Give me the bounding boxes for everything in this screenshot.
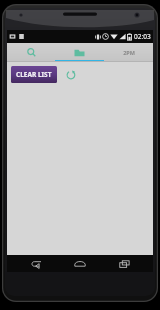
button[interactable]: Home xyxy=(65,255,95,272)
staticText: 2PM xyxy=(123,49,135,56)
button[interactable]: CLEAR LIST xyxy=(11,66,57,83)
staticText: CLEAR LIST xyxy=(16,70,52,79)
button[interactable]: 2PM xyxy=(104,43,153,62)
button[interactable]: Search xyxy=(7,43,55,62)
staticText: 02:03 xyxy=(134,32,151,41)
button[interactable]: Back xyxy=(21,255,51,272)
button[interactable]: Refresh xyxy=(64,68,78,82)
button[interactable]: Folders xyxy=(55,43,104,62)
button[interactable]: Recent apps xyxy=(109,255,139,272)
